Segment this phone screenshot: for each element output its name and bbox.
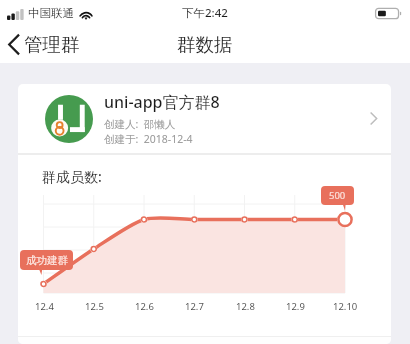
button[interactable]: uni-app官方群8: [18, 84, 391, 153]
staticText: 创建人: 邵懒人: [104, 117, 176, 131]
staticText: uni-app官方群8: [104, 91, 220, 113]
staticText: 12.9: [286, 300, 305, 313]
button[interactable]: 管理群: [0, 28, 90, 61]
staticText: 成功建群: [26, 254, 68, 267]
staticText: 下午2:42: [182, 5, 228, 21]
staticText: 12.4: [35, 300, 54, 313]
other: Group details: [369, 111, 378, 126]
staticText: 中国联通: [28, 6, 74, 20]
staticText: 12.7: [185, 300, 204, 313]
staticText: 12.5: [85, 300, 104, 313]
staticText: 500: [329, 189, 346, 202]
staticText: 群数据: [177, 33, 233, 56]
staticText: 群成员数:: [42, 167, 102, 186]
staticText: 管理群: [24, 33, 80, 56]
staticText: 创建于: 2018-12-4: [104, 132, 193, 146]
staticText: 12.10: [333, 300, 358, 313]
staticText: 12.8: [236, 300, 255, 313]
staticText: 12.6: [135, 300, 154, 313]
